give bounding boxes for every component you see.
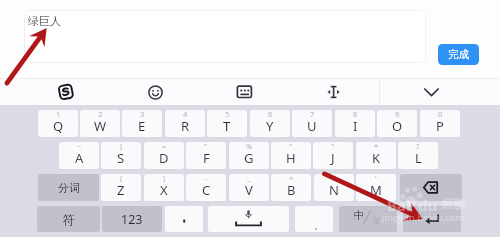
button[interactable]: Emoji <box>148 85 163 100</box>
staticText: J <box>331 149 335 167</box>
staticText: = <box>162 142 167 151</box>
button[interactable]: % <box>229 142 269 169</box>
button[interactable]: 2 <box>80 110 120 137</box>
staticText: 1 <box>56 110 61 119</box>
staticText: ? <box>416 142 420 151</box>
staticText: 9 <box>395 110 400 119</box>
staticText: ) <box>163 174 166 183</box>
button[interactable]: 4 <box>165 110 205 137</box>
button[interactable]: 9 <box>377 110 417 137</box>
staticText: Bai <box>387 195 411 215</box>
button[interactable]: 5 <box>207 110 247 137</box>
button[interactable]: * <box>356 142 396 169</box>
staticText: | <box>119 142 124 151</box>
staticText: C <box>202 181 211 199</box>
staticText: 3 <box>140 110 145 119</box>
button[interactable]: 分词 <box>38 174 99 201</box>
staticText: " <box>204 142 208 151</box>
staticText: 英 <box>373 217 381 226</box>
button[interactable]: = <box>144 142 184 169</box>
button[interactable]: ? <box>398 142 438 169</box>
button[interactable]: 6 <box>250 110 290 137</box>
staticText: Q <box>53 117 64 135</box>
staticText: U <box>307 117 317 135</box>
button[interactable]: Move cursor <box>324 84 344 100</box>
staticText: 绿巨人 <box>28 14 61 28</box>
button[interactable]: Hide keyboard <box>423 84 440 100</box>
staticText: % <box>246 142 253 151</box>
button[interactable]: Sogou input <box>56 82 76 102</box>
button[interactable]: 绿巨人 <box>24 10 426 63</box>
staticText: A <box>75 149 84 167</box>
button[interactable]: ( <box>101 174 141 201</box>
button[interactable]: Keyboard <box>236 85 253 99</box>
staticText: 0 <box>438 110 443 119</box>
staticText: 符 <box>63 212 75 227</box>
staticText: Y <box>266 117 274 135</box>
button[interactable]: ~ <box>59 142 99 169</box>
staticText: 123 <box>121 211 143 228</box>
button[interactable]: " <box>313 142 353 169</box>
staticText: Z <box>117 181 125 199</box>
button[interactable]: Space <box>208 206 289 232</box>
staticText: M <box>370 181 382 199</box>
staticText: 6 <box>268 110 273 119</box>
button[interactable]: 符 <box>37 206 100 232</box>
button[interactable]: ' <box>356 174 396 201</box>
staticText: V <box>245 181 253 199</box>
button[interactable]: / <box>314 174 354 201</box>
staticText: * <box>374 142 379 151</box>
button[interactable]: Switch Chinese English <box>339 206 397 232</box>
button[interactable] <box>165 206 203 232</box>
staticText: O <box>392 117 403 135</box>
button[interactable]: Backspace <box>400 174 462 201</box>
button[interactable]: " <box>186 142 226 169</box>
button[interactable]: Enter <box>403 206 461 232</box>
button[interactable]: 0 <box>420 110 460 137</box>
staticText: 经验 <box>442 196 466 211</box>
staticText: W <box>94 117 107 135</box>
staticText: " <box>289 142 293 151</box>
staticText: 4 <box>183 110 188 119</box>
button[interactable]: | <box>101 142 141 169</box>
staticText: P <box>436 117 444 135</box>
button[interactable]: 1 <box>38 110 78 137</box>
button[interactable]: 。 <box>295 206 333 232</box>
button[interactable]: " <box>271 142 311 169</box>
button[interactable]: + <box>271 174 311 201</box>
staticText: B <box>287 181 296 199</box>
staticText: 8 <box>353 110 358 119</box>
button[interactable]: 完成 <box>438 44 479 65</box>
staticText: ( <box>120 174 123 183</box>
staticText: 中 <box>354 209 365 222</box>
staticText: D <box>159 149 169 167</box>
staticText: 7 <box>310 110 315 119</box>
button[interactable]: ) <box>144 174 184 201</box>
staticText: / <box>333 174 336 183</box>
staticText: R <box>181 117 190 135</box>
staticText: jingyan.baidu.com <box>382 211 465 224</box>
staticText: L <box>415 149 422 167</box>
button[interactable]: 3 <box>122 110 162 137</box>
staticText: 5 <box>225 110 230 119</box>
button[interactable]: 123 <box>102 206 162 232</box>
button[interactable]: 8 <box>335 110 375 137</box>
staticText: du <box>418 195 438 215</box>
staticText: 2 <box>98 110 103 119</box>
staticText: X <box>160 181 168 199</box>
staticText: " <box>331 142 335 151</box>
staticText: 。 <box>314 220 323 231</box>
button[interactable]: - <box>186 174 226 201</box>
button[interactable]: _ <box>229 174 269 201</box>
staticText: F <box>203 149 210 167</box>
staticText: 分词 <box>58 181 80 195</box>
staticText: S <box>117 149 125 167</box>
staticText: K <box>372 149 381 167</box>
staticText: G <box>244 149 254 167</box>
staticText: + <box>289 174 294 183</box>
staticText: ' <box>375 174 377 183</box>
staticText: N <box>329 181 339 199</box>
staticText: E <box>138 117 146 135</box>
staticText: I <box>353 117 358 135</box>
button[interactable]: 7 <box>292 110 332 137</box>
